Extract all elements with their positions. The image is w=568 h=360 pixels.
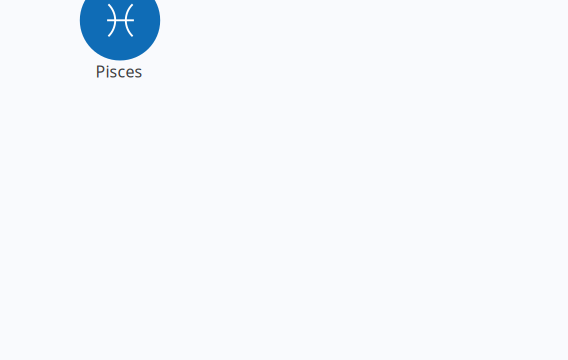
staticText: Pisces [95, 61, 142, 82]
button[interactable]: Pisces [80, 0, 160, 82]
